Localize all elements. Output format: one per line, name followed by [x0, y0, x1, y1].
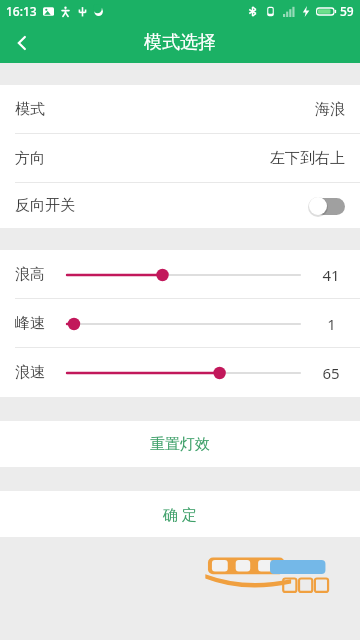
staticText: 1 — [327, 314, 336, 334]
staticText: 海浪 — [315, 100, 345, 119]
staticText: 峰速 — [15, 314, 57, 333]
button[interactable]: 方向 — [0, 134, 360, 183]
staticText: 16:13 — [6, 3, 37, 19]
button[interactable]: 浪高 — [0, 250, 360, 299]
button[interactable]: 反向开关 — [0, 183, 360, 228]
button[interactable]: 返回 — [0, 22, 44, 63]
staticText: 方向 — [15, 149, 45, 168]
button[interactable]: 确 定 — [0, 491, 360, 537]
button[interactable]: 浪速 — [0, 348, 360, 397]
staticText: 浪速 — [15, 363, 57, 382]
staticText: 41 — [322, 265, 340, 285]
staticText: 59 — [340, 3, 354, 19]
staticText: 反向开关 — [15, 196, 75, 215]
staticText: 左下到右上 — [270, 149, 345, 168]
staticText: 模式选择 — [144, 31, 216, 54]
staticText: 确 定 — [163, 504, 197, 524]
staticText: 模式 — [15, 100, 45, 119]
staticText: 浪高 — [15, 265, 57, 284]
button[interactable]: 峰速 — [0, 299, 360, 348]
button[interactable]: 模式 — [0, 85, 360, 134]
staticText: 65 — [322, 363, 340, 383]
staticText: 重置灯效 — [150, 435, 210, 454]
button[interactable]: 重置灯效 — [0, 421, 360, 467]
